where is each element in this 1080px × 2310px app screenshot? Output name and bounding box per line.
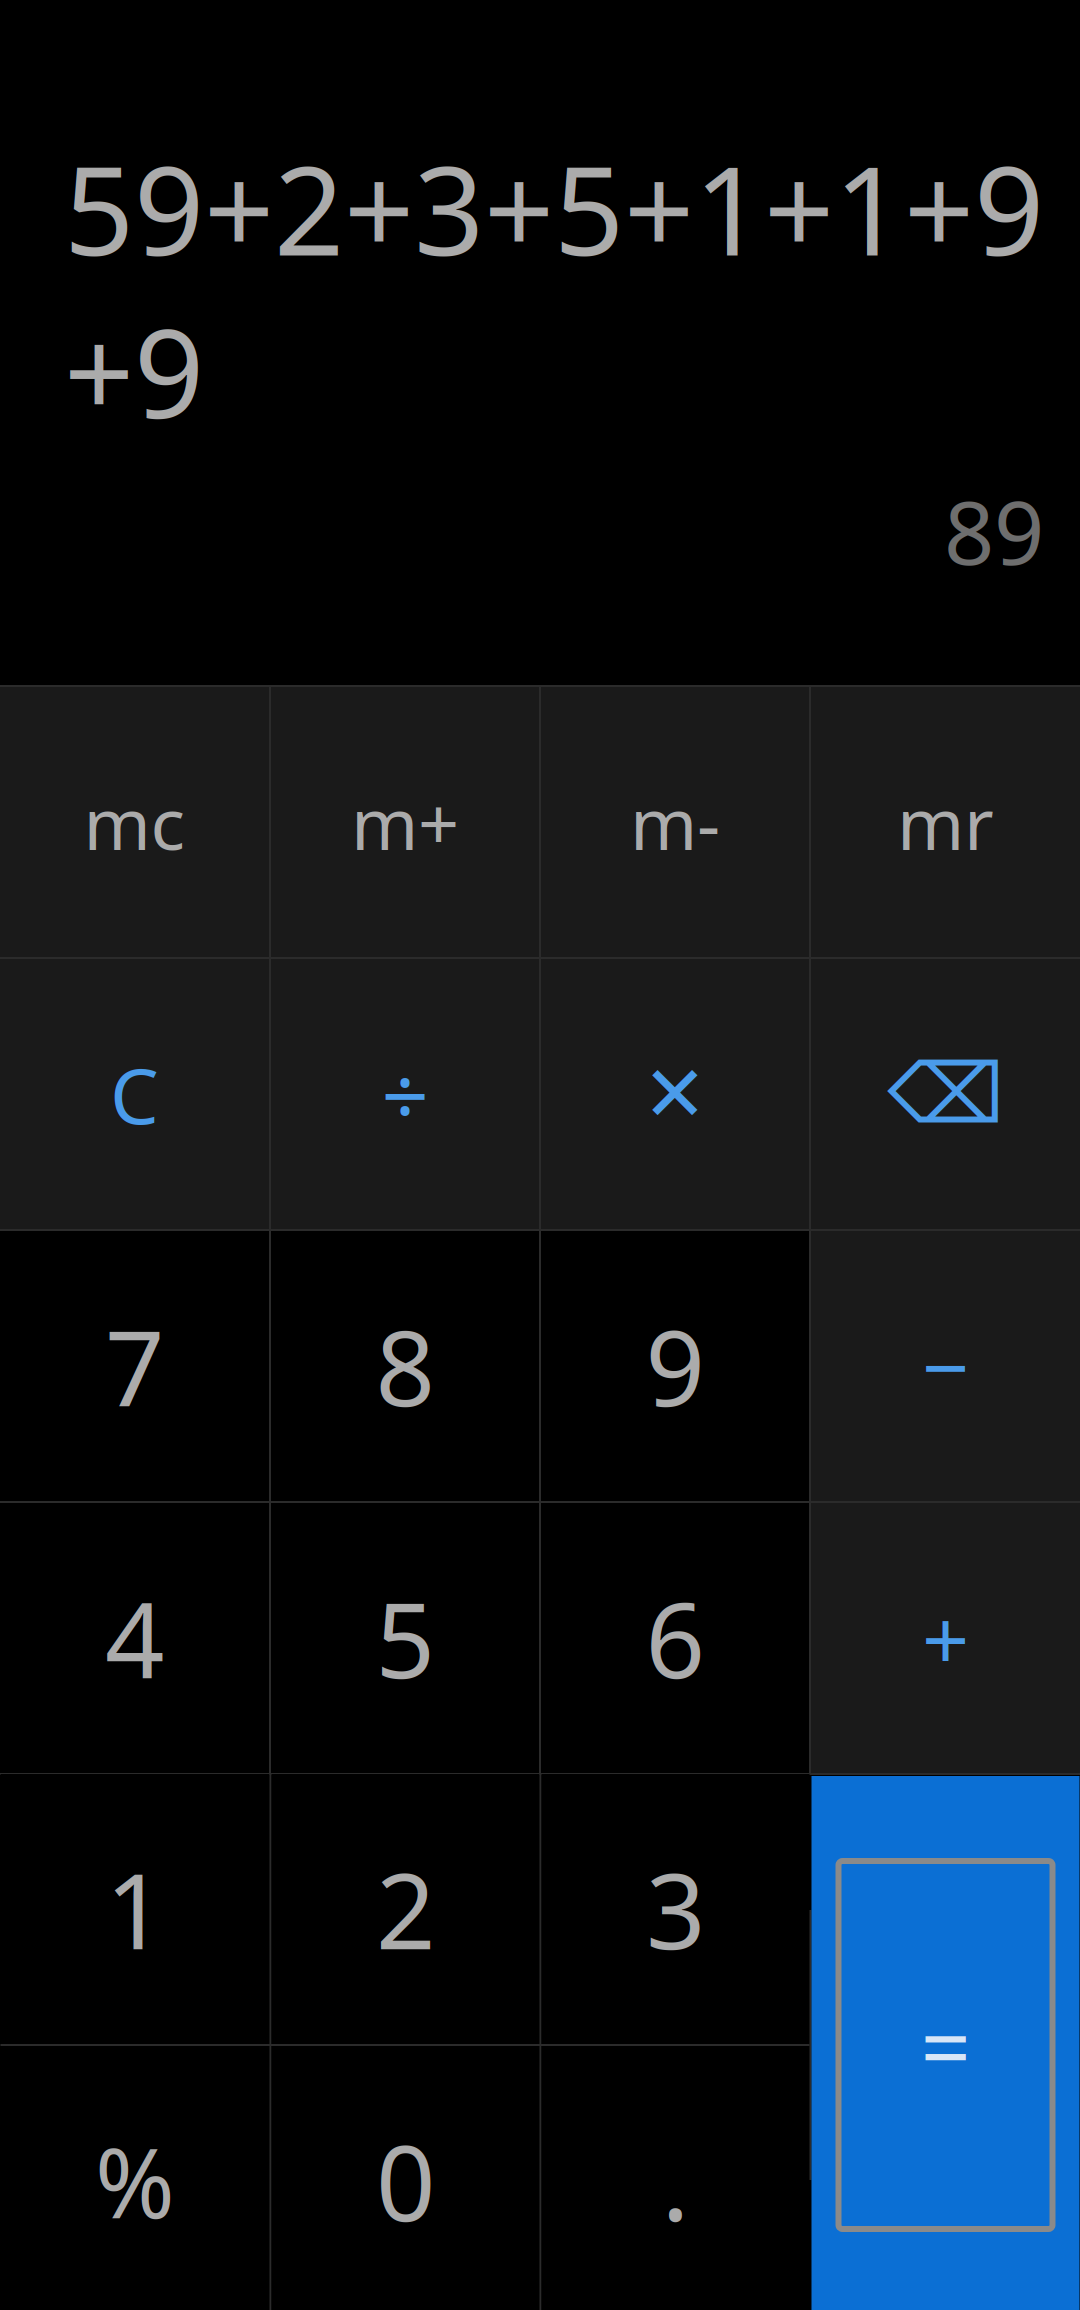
staticText: 2: [376, 1840, 435, 1978]
button[interactable]: 5: [271, 1503, 539, 1773]
button[interactable]: 6: [541, 1503, 809, 1773]
button[interactable]: mr: [811, 687, 1080, 957]
button[interactable]: C: [0, 959, 269, 1229]
staticText: .: [661, 2112, 689, 2250]
staticText: 5: [375, 1569, 434, 1707]
staticText: 8: [375, 1297, 434, 1435]
staticText: 59+2+3+5+1+1+9+9: [64, 126, 1044, 452]
button[interactable]: 0: [271, 2046, 539, 2310]
staticText: 6: [645, 1569, 704, 1707]
staticText: ✕: [642, 1050, 707, 1138]
button[interactable]: mc: [0, 687, 269, 957]
button[interactable]: +: [811, 1503, 1080, 1773]
button[interactable]: 4: [0, 1503, 269, 1773]
staticText: 0: [376, 2112, 435, 2250]
button[interactable]: 1: [0, 1774, 269, 2044]
button[interactable]: m-: [541, 687, 809, 957]
staticText: 3: [646, 1840, 705, 1978]
staticText: =: [920, 1987, 970, 2103]
staticText: 9: [645, 1297, 704, 1435]
staticText: 7: [105, 1297, 164, 1435]
staticText: m+: [351, 774, 459, 870]
staticText: ⌫: [887, 1047, 1004, 1141]
button[interactable]: 3: [541, 1774, 809, 2044]
button[interactable]: .: [541, 2046, 809, 2310]
button[interactable]: 8: [271, 1231, 539, 1501]
button[interactable]: Backspace: [811, 959, 1080, 1229]
button[interactable]: m+: [271, 687, 539, 957]
staticText: m-: [630, 774, 720, 870]
staticText: +: [922, 1583, 969, 1693]
button[interactable]: ÷: [271, 959, 539, 1229]
staticText: 1: [105, 1840, 164, 1978]
button[interactable]: 9: [541, 1231, 809, 1501]
staticText: mc: [83, 774, 185, 870]
button[interactable]: 7: [0, 1231, 269, 1501]
button[interactable]: ✕: [541, 959, 809, 1229]
staticText: %: [95, 2117, 175, 2245]
button[interactable]: %: [0, 2046, 269, 2310]
staticText: 4: [105, 1569, 164, 1707]
button[interactable]: −: [811, 1231, 1080, 1501]
staticText: −: [922, 1311, 969, 1421]
staticText: ÷: [381, 1039, 428, 1149]
button[interactable]: Equals: [811, 1776, 1079, 2310]
staticText: mr: [897, 774, 994, 870]
button[interactable]: 2: [271, 1774, 539, 2044]
staticText: 89: [944, 472, 1044, 589]
staticText: C: [110, 1043, 159, 1145]
